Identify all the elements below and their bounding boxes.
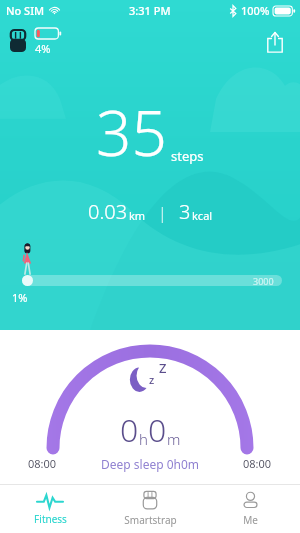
button[interactable]: 4% — [8, 28, 61, 56]
staticText: 0 — [120, 408, 139, 452]
staticText: 3:31 PM — [129, 3, 171, 18]
button[interactable]: Smartstrap — [100, 487, 200, 531]
staticText: Fitness — [34, 512, 67, 526]
staticText: km — [129, 208, 146, 223]
button[interactable]: Share — [260, 27, 290, 57]
staticText: 3000 — [253, 275, 274, 286]
staticText: 08:00 — [243, 456, 272, 471]
staticText: Me — [243, 513, 258, 527]
staticText: 1% — [12, 290, 28, 305]
staticText: kcal — [192, 208, 213, 223]
staticText: No SIM — [6, 3, 45, 18]
staticText: 35 — [96, 90, 167, 174]
staticText: 4% — [35, 41, 51, 56]
staticText: 3 — [179, 198, 191, 225]
staticText: h — [139, 429, 148, 449]
staticText: 0 — [148, 408, 167, 452]
staticText: Z — [159, 359, 167, 377]
button[interactable]: Fitness — [0, 489, 100, 530]
button[interactable]: Me — [200, 488, 300, 531]
staticText: m — [167, 429, 181, 449]
staticText: Deep sleep 0h0m — [101, 456, 200, 472]
staticText: Smartstrap — [124, 513, 177, 527]
staticText: steps — [171, 147, 204, 165]
staticText: z — [149, 372, 155, 387]
staticText: | — [158, 202, 167, 224]
staticText: 0.03 — [88, 198, 128, 225]
staticText: 100% — [241, 3, 270, 18]
staticText: 08:00 — [28, 456, 57, 471]
